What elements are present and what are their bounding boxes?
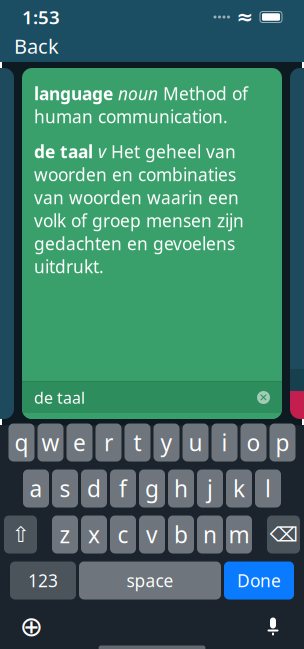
- staticText: ⌫: [269, 523, 297, 546]
- button[interactable]: z: [52, 515, 78, 553]
- staticText: a: [29, 473, 42, 503]
- staticText: c: [117, 519, 128, 549]
- staticText: e: [73, 427, 86, 457]
- staticText: j: [207, 473, 213, 503]
- button[interactable]: u: [182, 423, 208, 461]
- button[interactable]: s: [52, 469, 78, 507]
- staticText: g: [145, 473, 159, 503]
- staticText: x: [88, 519, 100, 549]
- staticText: language noun Method of human communicat…: [34, 82, 248, 128]
- button[interactable]: e: [66, 423, 92, 461]
- staticText: d: [87, 473, 101, 503]
- staticText: f: [119, 473, 127, 503]
- button[interactable]: o: [240, 423, 266, 461]
- staticText: v: [146, 519, 158, 549]
- staticText: u: [188, 427, 202, 457]
- button[interactable]: k: [226, 469, 252, 507]
- button[interactable]: Done: [224, 561, 294, 599]
- staticText: y: [160, 427, 172, 457]
- staticText: i: [221, 427, 227, 457]
- button[interactable]: v: [139, 515, 165, 553]
- staticText: q: [14, 427, 28, 457]
- button[interactable]: Dictation: [258, 611, 288, 641]
- staticText: z: [59, 519, 70, 549]
- staticText: m: [228, 519, 249, 549]
- staticText: n: [203, 519, 217, 549]
- staticText: o: [246, 427, 260, 457]
- staticText: 1:53: [22, 5, 60, 29]
- button[interactable]: Back: [0, 29, 73, 63]
- button[interactable]: d: [81, 469, 107, 507]
- staticText: p: [275, 427, 289, 457]
- button[interactable]: space: [79, 561, 221, 599]
- button[interactable]: l: [255, 469, 281, 507]
- staticText: l: [265, 473, 271, 503]
- staticText: de taal: [34, 387, 85, 408]
- button[interactable]: h: [168, 469, 194, 507]
- button[interactable]: x: [81, 515, 107, 553]
- staticText: Back: [14, 33, 59, 59]
- staticText: h: [174, 473, 188, 503]
- staticText: ⇧: [11, 522, 29, 547]
- staticText: w: [41, 427, 59, 457]
- button[interactable]: p: [269, 423, 295, 461]
- staticText: ✕: [259, 391, 268, 403]
- button[interactable]: ⇧: [4, 515, 37, 553]
- button[interactable]: ⌫: [267, 515, 300, 553]
- button[interactable]: j: [197, 469, 223, 507]
- button[interactable]: c: [110, 515, 136, 553]
- button[interactable]: a: [23, 469, 49, 507]
- button[interactable]: Clear text: [257, 391, 270, 404]
- staticText: de taal v Het geheel van woorden en comb…: [34, 140, 244, 278]
- button[interactable]: r: [95, 423, 121, 461]
- button[interactable]: i: [211, 423, 237, 461]
- button[interactable]: b: [168, 515, 194, 553]
- staticText: s: [59, 473, 70, 503]
- button[interactable]: n: [197, 515, 223, 553]
- staticText: k: [233, 473, 245, 503]
- button[interactable]: m: [226, 515, 252, 553]
- staticText: 123: [28, 569, 58, 592]
- staticText: t: [133, 427, 141, 457]
- button[interactable]: 123: [10, 561, 76, 599]
- staticText: b: [174, 519, 188, 549]
- button[interactable]: w: [37, 423, 63, 461]
- button[interactable]: f: [110, 469, 136, 507]
- staticText: ⊕: [19, 611, 42, 642]
- staticText: space: [126, 569, 173, 592]
- button[interactable]: t: [124, 423, 150, 461]
- button[interactable]: g: [139, 469, 165, 507]
- button[interactable]: q: [8, 423, 34, 461]
- staticText: Done: [237, 569, 281, 592]
- button[interactable]: Change keyboard: [16, 611, 46, 641]
- button[interactable]: y: [153, 423, 179, 461]
- staticText: ≈: [236, 6, 253, 28]
- staticText: r: [104, 427, 113, 457]
